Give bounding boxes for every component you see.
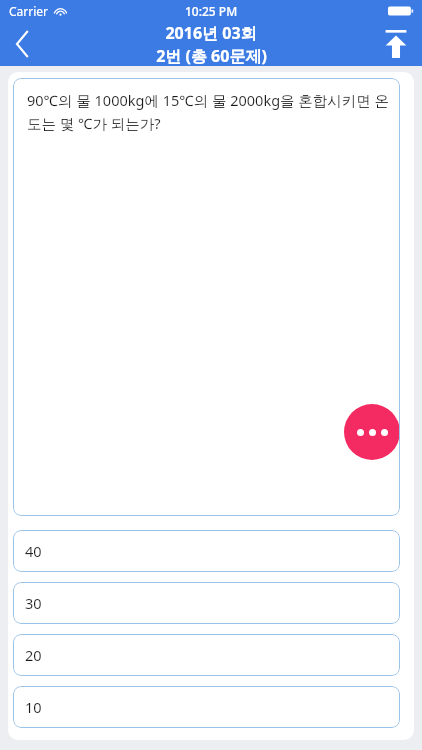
button[interactable]: 10 xyxy=(13,686,400,728)
staticText: 20 xyxy=(25,645,42,665)
staticText: Carrier xyxy=(9,3,49,19)
button[interactable]: More options xyxy=(344,404,400,460)
button[interactable]: 90℃의 물 1000kg에 15℃의 물 2000kg을 혼합시키면 온도는 … xyxy=(13,78,400,516)
button[interactable]: 40 xyxy=(13,530,400,572)
button[interactable]: Back xyxy=(0,22,46,66)
staticText: 10 xyxy=(25,697,42,717)
staticText: 30 xyxy=(25,593,42,613)
staticText: 2번 (총 60문제) xyxy=(156,45,267,66)
staticText: 40 xyxy=(25,541,42,561)
button[interactable]: Upload xyxy=(370,22,422,66)
button[interactable]: 30 xyxy=(13,582,400,624)
staticText: 2016년 03회 xyxy=(165,22,257,44)
staticText: 90℃의 물 1000kg에 15℃의 물 2000kg을 혼합시키면 온도는 … xyxy=(27,90,390,133)
button[interactable]: 20 xyxy=(13,634,400,676)
staticText: 10:25 PM xyxy=(185,3,238,19)
